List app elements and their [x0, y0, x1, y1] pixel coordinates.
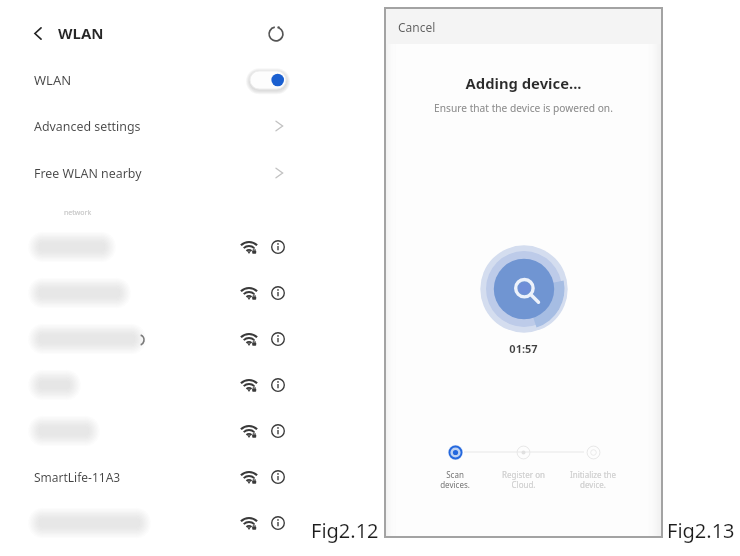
- staticText: Cancel: [398, 19, 436, 35]
- staticText: WLAN: [58, 23, 104, 43]
- staticText: Scan devices.: [440, 469, 470, 490]
- staticText: Free WLAN nearby: [34, 165, 142, 182]
- button[interactable]: SmartLife-11A3: [0, 454, 310, 500]
- staticText: Ensure that the device is powered on.: [386, 101, 661, 115]
- button[interactable]: Scan devices.: [420, 445, 490, 490]
- other: Back: [34, 27, 42, 40]
- staticText: Fig2.12: [311, 517, 379, 544]
- button[interactable]: Initialize the device.: [558, 445, 628, 490]
- button[interactable]: Back: [0, 3, 104, 63]
- button[interactable]: WLAN: [0, 58, 310, 102]
- button[interactable]: [0, 362, 310, 408]
- button[interactable]: Free WLAN nearby: [0, 150, 310, 196]
- button[interactable]: Refresh: [268, 26, 284, 42]
- button[interactable]: [0, 408, 310, 454]
- button[interactable]: [0, 316, 310, 362]
- staticText: Fig2.13: [667, 517, 735, 544]
- button[interactable]: [0, 224, 310, 270]
- button[interactable]: Register on Cloud.: [488, 445, 558, 490]
- button[interactable]: [0, 270, 310, 316]
- staticText: Register on Cloud.: [502, 469, 545, 490]
- staticText: network: [64, 208, 92, 218]
- staticText: Advanced settings: [34, 118, 141, 135]
- staticText: SmartLife-11A3: [34, 469, 121, 485]
- button[interactable]: Advanced settings: [0, 103, 310, 149]
- button[interactable]: [0, 500, 310, 546]
- staticText: Initialize the device.: [570, 469, 616, 490]
- staticText: Adding device...: [386, 73, 661, 93]
- staticText: WLAN: [34, 71, 72, 89]
- staticText: 01:57: [386, 341, 661, 356]
- button[interactable]: Cancel: [398, 19, 436, 35]
